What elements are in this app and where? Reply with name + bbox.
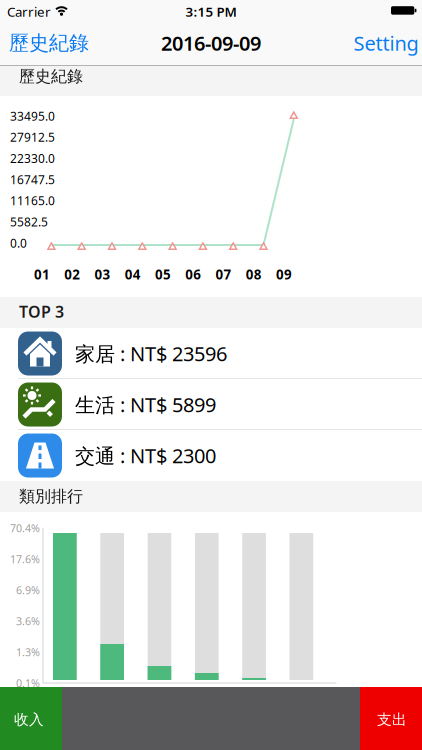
staticText: 27912.5 [10,129,55,145]
staticText: 生活 : NT$ 5899 [75,391,216,418]
staticText: 類別排行 [19,487,83,506]
button[interactable]: 收入 [0,687,62,750]
staticText: 收入 [14,710,44,728]
staticText: 11165.0 [10,193,55,209]
staticText: 家居 : NT$ 23596 [75,340,227,367]
staticText: 33495.0 [10,108,55,124]
staticText: 08 [246,265,262,283]
staticText: 05 [155,265,171,283]
button[interactable]: 歷史紀錄 [9,31,89,55]
staticText: Carrier [7,3,51,20]
staticText: 3.6% [16,614,40,628]
staticText: TOP 3 [19,301,64,322]
staticText: 04 [125,265,141,283]
button[interactable]: Setting [353,30,418,56]
staticText: 70.4% [10,521,40,535]
staticText: 歷史紀錄 [19,67,83,86]
staticText: 1.3% [16,645,40,659]
staticText: 03 [94,265,110,283]
staticText: 歷史紀錄 [9,31,89,55]
staticText: 17.6% [10,552,40,566]
staticText: 交通 : NT$ 2300 [75,442,216,469]
button[interactable]: 支出 [360,687,422,750]
staticText: 02 [64,265,80,283]
staticText: 01 [34,265,50,283]
staticText: 0.1% [16,676,40,690]
staticText: 6.9% [16,583,40,597]
button[interactable]: 交通 : NT$ 2300 [0,430,422,481]
staticText: 07 [215,265,231,283]
staticText: 3:15 PM [185,3,236,20]
staticText: 支出 [377,710,407,728]
staticText: 22330.0 [10,150,55,166]
staticText: 5582.5 [10,214,48,230]
staticText: Setting [353,30,418,56]
button[interactable]: 家居 : NT$ 23596 [0,328,422,379]
button[interactable]: 生活 : NT$ 5899 [0,379,422,430]
staticText: 16747.5 [10,171,55,187]
staticText: 2016-09-09 [161,30,261,56]
staticText: 0.0 [10,235,27,251]
staticText: 09 [276,265,292,283]
staticText: 06 [185,265,201,283]
